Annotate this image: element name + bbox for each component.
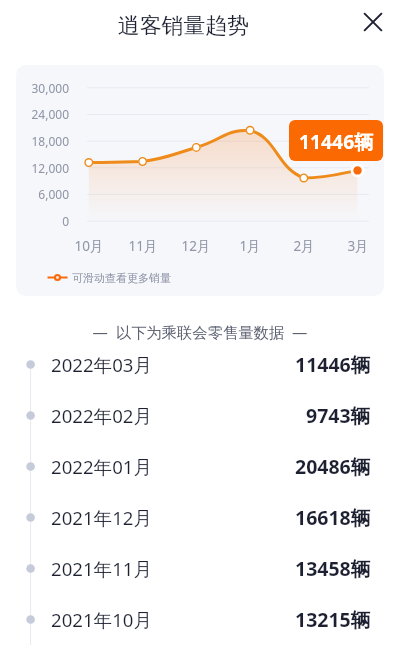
staticText: 2021年10月	[51, 607, 153, 632]
staticText: 1月	[230, 237, 270, 255]
staticText: 12月	[176, 237, 216, 255]
staticText: 6,000	[16, 186, 69, 202]
staticText: 24,000	[16, 106, 69, 122]
staticText: 18,000	[16, 133, 69, 149]
button[interactable]: 2021年10月	[0, 594, 400, 645]
button[interactable]: 2021年12月	[0, 492, 400, 543]
staticText: 20486辆	[295, 453, 371, 480]
staticText: 3月	[338, 237, 378, 255]
staticText: 12,000	[16, 160, 69, 176]
staticText: 11446辆	[299, 128, 374, 154]
button[interactable]: Close	[353, 2, 393, 42]
staticText: 2022年03月	[51, 352, 153, 377]
button[interactable]: 2022年01月	[0, 441, 400, 492]
button[interactable]: 11446辆	[289, 120, 383, 161]
staticText: 2022年01月	[51, 454, 153, 479]
staticText: 逍客销量趋势	[118, 12, 249, 39]
staticText: 13458辆	[295, 555, 371, 582]
staticText: 10月	[69, 237, 109, 255]
button[interactable]: 2022年03月	[0, 339, 400, 390]
staticText: — 以下为乘联会零售量数据 —	[0, 322, 400, 343]
staticText: 13215辆	[295, 606, 371, 633]
staticText: 30,000	[16, 80, 69, 96]
staticText: 0	[16, 213, 69, 229]
staticText: 9743辆	[306, 402, 371, 429]
button[interactable]: 2021年11月	[0, 543, 400, 594]
staticText: 2021年12月	[51, 505, 153, 530]
staticText: 2月	[284, 237, 324, 255]
staticText: 可滑动查看更多销量	[72, 271, 171, 285]
staticText: 16618辆	[295, 504, 371, 531]
staticText: 2022年02月	[51, 403, 153, 428]
staticText: 2021年11月	[51, 556, 153, 581]
staticText: 11446辆	[295, 351, 371, 378]
button[interactable]: 2022年02月	[0, 390, 400, 441]
staticText: 11月	[123, 237, 163, 255]
